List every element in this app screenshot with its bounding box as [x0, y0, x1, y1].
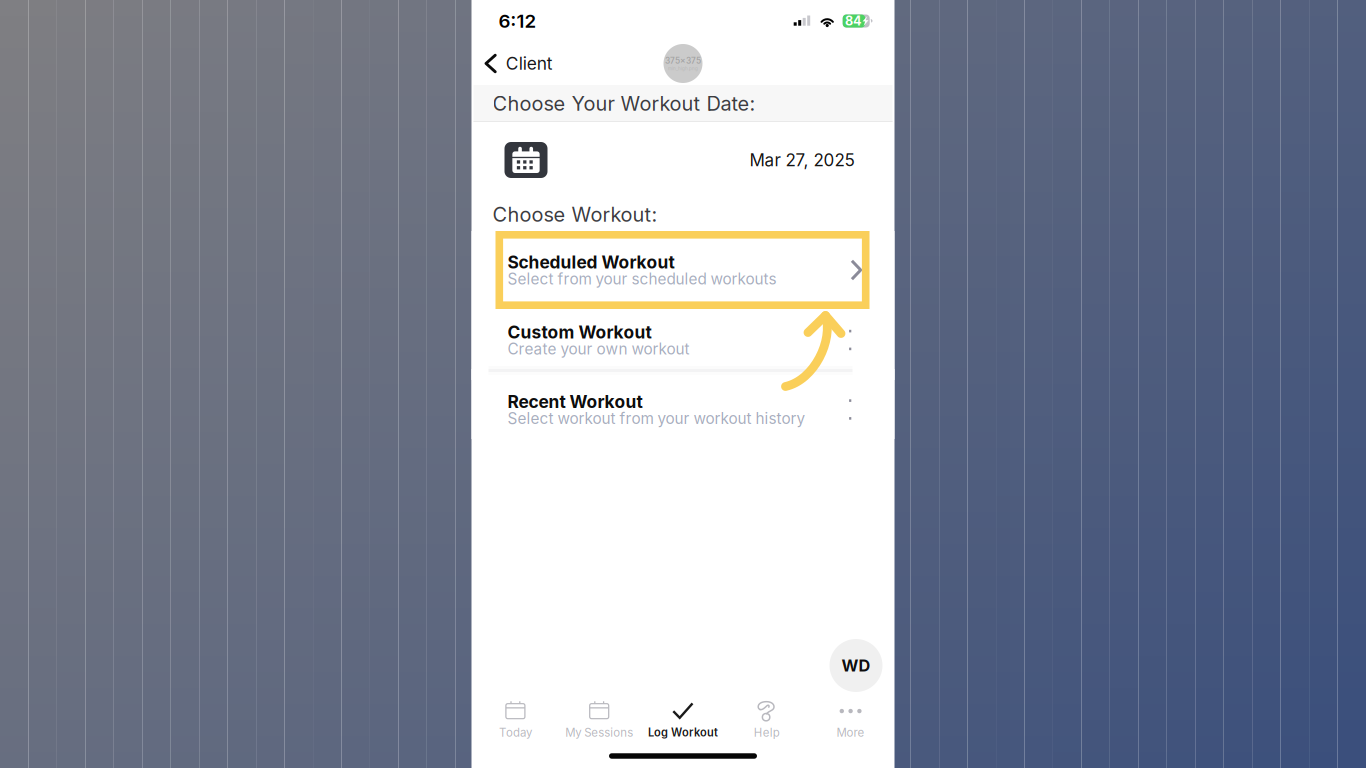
button[interactable]: More	[809, 696, 892, 744]
staticText: Choose Your Workout Date:	[492, 91, 755, 116]
button[interactable]: Scheduled Workout	[489, 237, 876, 303]
staticText: My Sessions	[565, 726, 633, 739]
staticText: min_high.png	[668, 66, 698, 71]
staticText: Recent Workout	[507, 391, 642, 412]
staticText: More	[837, 726, 865, 739]
button[interactable]: Client	[473, 42, 563, 85]
staticText: Log Workout	[648, 726, 718, 739]
staticText: Today	[499, 726, 532, 739]
staticText: 84	[845, 13, 862, 29]
staticText: WD	[841, 656, 870, 675]
button[interactable]: Mar 27, 2025	[473, 122, 892, 198]
staticText: Create your own workout	[507, 340, 689, 358]
staticText: Mar 27, 2025	[749, 150, 854, 170]
button[interactable]: My Sessions	[557, 696, 641, 744]
staticText: Select from your scheduled workouts	[507, 270, 776, 288]
staticText: Custom Workout	[507, 322, 651, 343]
staticText: Choose Workout:	[492, 202, 657, 227]
button[interactable]: Profile photo	[663, 44, 702, 83]
button[interactable]: Custom Workout	[489, 311, 851, 369]
button[interactable]: Help	[725, 696, 809, 744]
staticText: Select workout from your workout history	[507, 409, 805, 428]
button[interactable]: Account	[829, 639, 882, 692]
staticText: Help	[754, 726, 780, 739]
button[interactable]: Recent Workout	[489, 380, 851, 439]
button[interactable]: Log Workout	[641, 696, 725, 744]
staticText: 6:12	[498, 10, 536, 32]
staticText: Scheduled Workout	[507, 252, 674, 273]
button[interactable]: Today	[473, 696, 557, 744]
staticText: 375×375	[665, 56, 701, 66]
staticText: Client	[506, 53, 553, 74]
